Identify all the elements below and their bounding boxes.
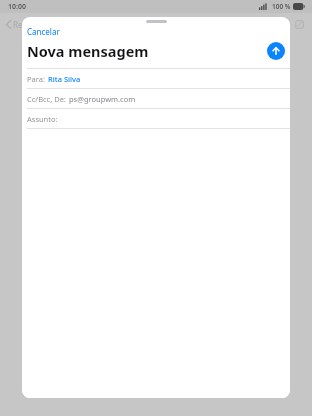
staticText: Rita Silva: [48, 74, 81, 84]
staticText: Para:: [27, 74, 45, 84]
staticText: Cc/Bcc, De:: [27, 94, 66, 104]
button[interactable]: Enviar: [267, 42, 285, 60]
button[interactable]: Cancelar: [25, 24, 62, 38]
staticText: Cancelar: [27, 26, 60, 36]
button[interactable]: Para:: [22, 69, 290, 88]
staticText: 10:00: [8, 2, 26, 12]
staticText: Nova mensagem: [27, 41, 149, 61]
button[interactable]: Cc/Bcc, De:: [22, 89, 290, 108]
staticText: Assunto:: [27, 114, 58, 124]
button[interactable]: Assunto:: [22, 109, 290, 128]
staticText: 100 %: [272, 2, 291, 11]
staticText: Recebidos: [13, 19, 52, 30]
staticText: ps@groupwm.com: [69, 94, 136, 104]
button[interactable]: Nova mensagem: [293, 18, 306, 31]
button[interactable]: Recebidos: [4, 17, 54, 32]
